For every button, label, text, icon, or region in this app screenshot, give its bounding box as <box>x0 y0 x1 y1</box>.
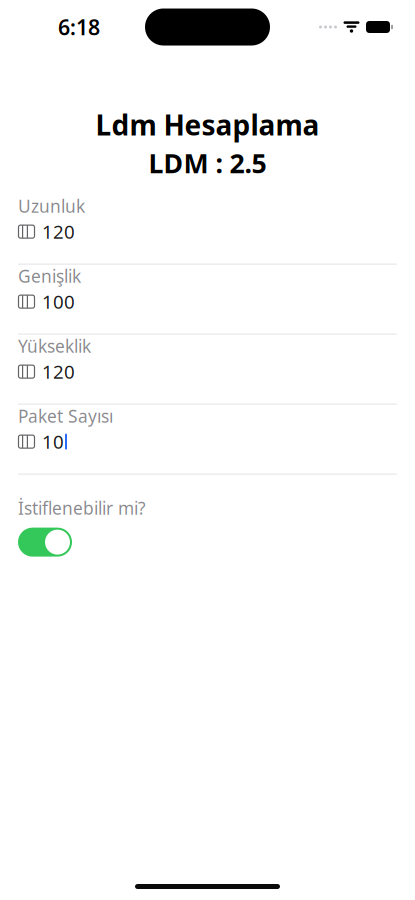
staticText: 100 <box>42 289 75 314</box>
staticText: 10 <box>42 429 64 454</box>
button[interactable]: İstiflenebilir mi? <box>0 475 415 557</box>
staticText: Genişlik <box>18 265 81 288</box>
button[interactable]: Yükseklik <box>0 335 415 405</box>
staticText: İstiflenebilir mi? <box>18 497 146 520</box>
staticText: Ldm Hesaplama <box>95 106 319 143</box>
staticText: Uzunluk <box>18 195 85 218</box>
staticText: 6:18 <box>58 13 100 41</box>
staticText: Yükseklik <box>18 335 91 358</box>
button[interactable]: Paket Sayısı <box>0 405 415 475</box>
button[interactable]: Uzunluk <box>0 195 415 265</box>
staticText: Paket Sayısı <box>18 405 113 428</box>
staticText: LDM : 2.5 <box>148 145 266 181</box>
staticText: 120 <box>42 219 75 244</box>
button[interactable]: Genişlik <box>0 265 415 335</box>
staticText: 120 <box>42 359 75 384</box>
